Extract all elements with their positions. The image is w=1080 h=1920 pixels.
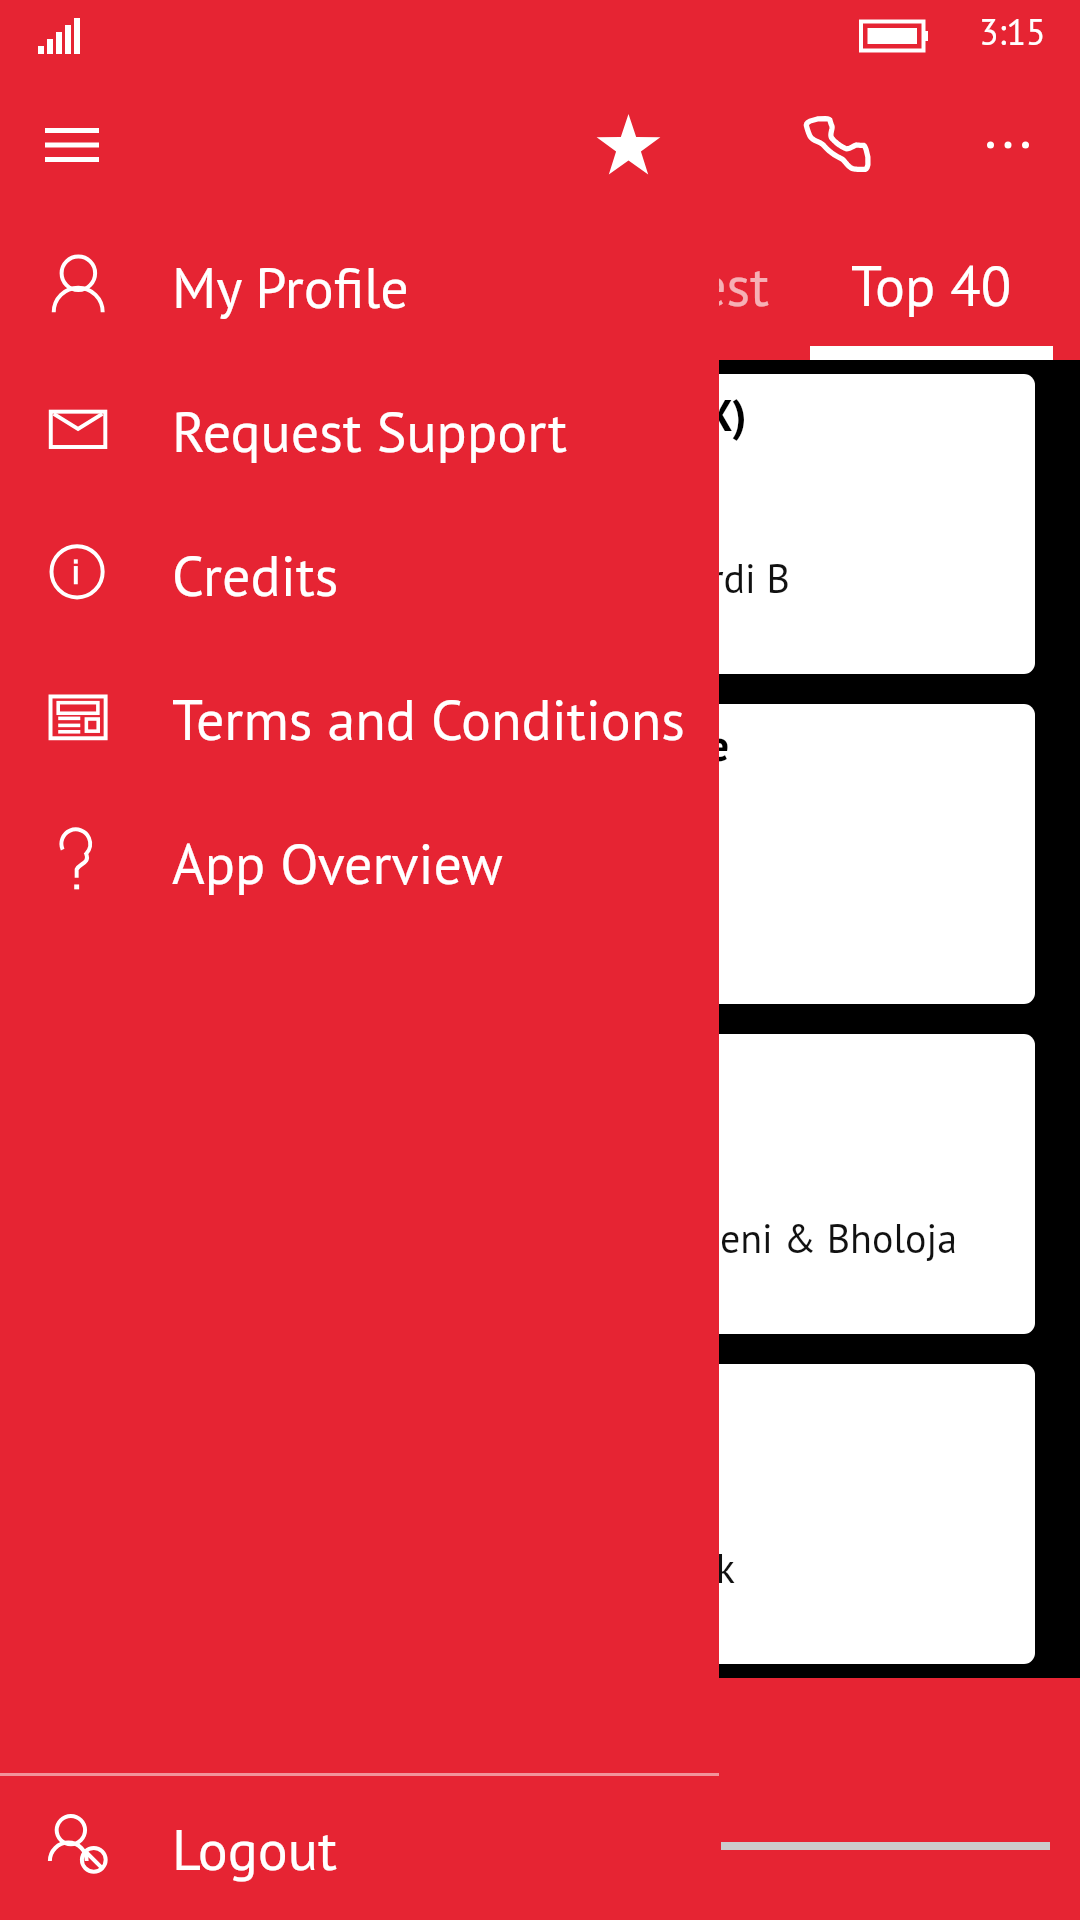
staticText: Charlie Puth	[470, 882, 680, 934]
staticText: Request Support	[172, 395, 567, 467]
button[interactable]: Call	[780, 90, 890, 200]
button[interactable]: BODAK YELLOW (MIX)	[45, 374, 1035, 674]
button[interactable]: WOLVES	[45, 1364, 1035, 1664]
staticText: App Overview	[172, 827, 503, 899]
button[interactable]: Open navigation menu	[22, 95, 122, 195]
staticText: Mi Gente	[561, 716, 730, 773]
staticText: 3:15	[979, 8, 1046, 55]
staticText: Credits	[172, 539, 339, 611]
staticText: BODAK YELLOW (MIX)	[331, 386, 747, 443]
button[interactable]: KU ROMANTIC	[45, 1034, 1035, 1334]
button[interactable]: Favorites	[573, 90, 683, 200]
staticText: Cardi B	[668, 552, 790, 604]
button[interactable]: My Profile	[0, 215, 719, 359]
button[interactable]: Credits	[0, 503, 719, 647]
staticText: Terms and Conditions	[172, 683, 685, 755]
button[interactable]: Top 40	[810, 196, 1053, 360]
button[interactable]: More options	[953, 90, 1063, 200]
button[interactable]: Request Support	[0, 359, 719, 503]
staticText: Marshmello & Jack	[411, 1542, 735, 1594]
button[interactable]: App Overview	[0, 791, 719, 935]
button[interactable]: Terms and Conditions	[0, 647, 719, 791]
button[interactable]: Mi Gente	[45, 704, 1035, 1004]
staticText: Latest	[624, 249, 769, 321]
staticText: My Profile	[172, 251, 409, 323]
staticText: Logout	[172, 1813, 337, 1885]
button[interactable]: Latest	[574, 196, 818, 360]
staticText: Top 40	[851, 249, 1012, 321]
button[interactable]: Logout	[0, 1778, 719, 1920]
staticText: Lwazi Mseni & Bholoja	[565, 1212, 958, 1264]
